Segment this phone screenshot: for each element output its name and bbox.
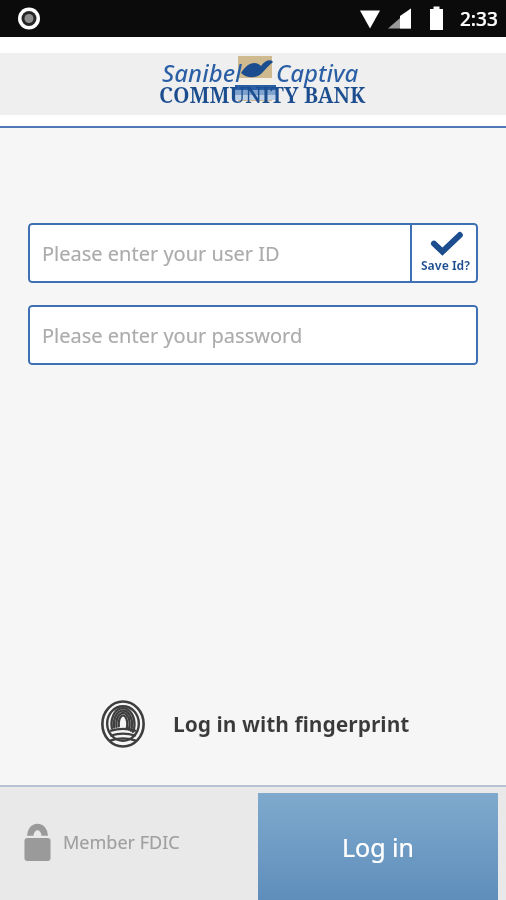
button[interactable]: Please enter your user ID (28, 223, 410, 283)
staticText: Log in (342, 830, 415, 864)
staticText: Please enter your password (42, 322, 303, 349)
button[interactable]: Log in with fingerprint (0, 693, 506, 755)
button[interactable]: Member FDIC (23, 785, 180, 900)
staticText: 2:33 (460, 6, 498, 32)
staticText: Sanibel (162, 56, 242, 89)
staticText: COMMUNITY BANK (159, 81, 366, 110)
button[interactable]: Log in (258, 793, 498, 900)
staticText: Member FDIC (63, 830, 180, 855)
button[interactable]: Save Id (412, 223, 478, 283)
button[interactable]: Please enter your password (28, 305, 478, 365)
staticText: Please enter your user ID (42, 240, 280, 267)
staticText: Log in with fingerprint (173, 710, 410, 739)
staticText: Save Id? (421, 257, 470, 273)
staticText: Captiva (276, 56, 359, 89)
